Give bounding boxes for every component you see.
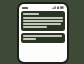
button[interactable] [21,11,65,31]
button[interactable] [21,33,65,43]
other: Status icons [52,6,64,9]
